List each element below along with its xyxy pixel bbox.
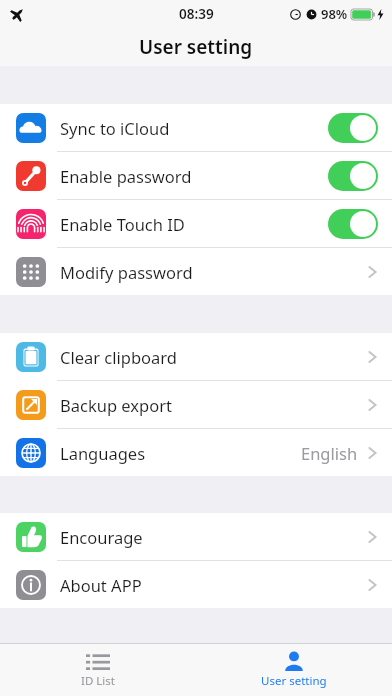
staticText: User setting xyxy=(261,673,327,689)
button[interactable]: Enable Touch ID xyxy=(0,200,392,247)
button[interactable]: Enable password xyxy=(0,152,392,199)
button[interactable]: User setting xyxy=(196,644,392,696)
staticText: Languages xyxy=(60,442,146,464)
staticText: Encourage xyxy=(60,526,143,548)
staticText: Clear clipboard xyxy=(60,346,177,368)
button[interactable]: Toggle on xyxy=(328,209,378,239)
button[interactable]: Languages xyxy=(0,429,392,476)
staticText: Backup export xyxy=(60,394,172,416)
button[interactable]: About APP xyxy=(0,561,392,608)
button[interactable]: Backup export xyxy=(0,381,392,428)
staticText: About APP xyxy=(60,574,142,596)
button[interactable]: Toggle on xyxy=(328,161,378,191)
staticText: 98% xyxy=(321,5,348,23)
staticText: Enable Touch ID xyxy=(60,213,185,235)
staticText: ID List xyxy=(81,673,115,689)
staticText: Enable password xyxy=(60,165,192,187)
staticText: User setting xyxy=(139,34,253,60)
button[interactable]: Toggle on xyxy=(328,113,378,143)
button[interactable]: Sync to iCloud xyxy=(0,104,392,151)
staticText: English xyxy=(301,442,358,464)
button[interactable]: Modify password xyxy=(0,248,392,295)
button[interactable]: Encourage xyxy=(0,513,392,560)
button[interactable]: ID List xyxy=(0,644,196,696)
staticText: Modify password xyxy=(60,261,193,283)
staticText: 08:39 xyxy=(179,5,214,23)
button[interactable]: Clear clipboard xyxy=(0,333,392,380)
staticText: Sync to iCloud xyxy=(60,117,170,139)
